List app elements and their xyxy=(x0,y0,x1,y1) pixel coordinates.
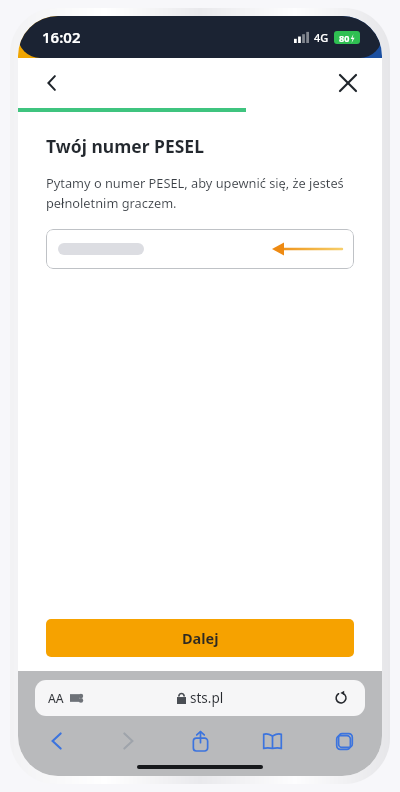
staticText: Twój numer PESEL xyxy=(46,134,204,158)
button[interactable]: AA xyxy=(35,680,365,716)
button[interactable]: Back xyxy=(34,724,78,758)
button[interactable]: Tabs xyxy=(322,724,366,758)
staticText: sts.pl xyxy=(190,689,224,707)
button[interactable]: Reload xyxy=(330,687,352,709)
button[interactable]: Share xyxy=(178,724,222,758)
button[interactable]: Close xyxy=(328,63,368,103)
staticText: Pytamy o numer PESEL, aby upewnić się, ż… xyxy=(46,174,354,211)
staticText: Dalej xyxy=(182,628,219,648)
button[interactable]: Back xyxy=(32,63,72,103)
button[interactable]: Bookmarks xyxy=(250,724,294,758)
staticText: 80 xyxy=(339,32,350,44)
button[interactable]: Forward xyxy=(106,724,150,758)
staticText: AA xyxy=(48,690,64,706)
staticText: 16:02 xyxy=(42,27,81,47)
staticText: 4G xyxy=(314,30,329,45)
button[interactable] xyxy=(46,229,354,269)
button[interactable]: Dalej xyxy=(46,619,354,657)
